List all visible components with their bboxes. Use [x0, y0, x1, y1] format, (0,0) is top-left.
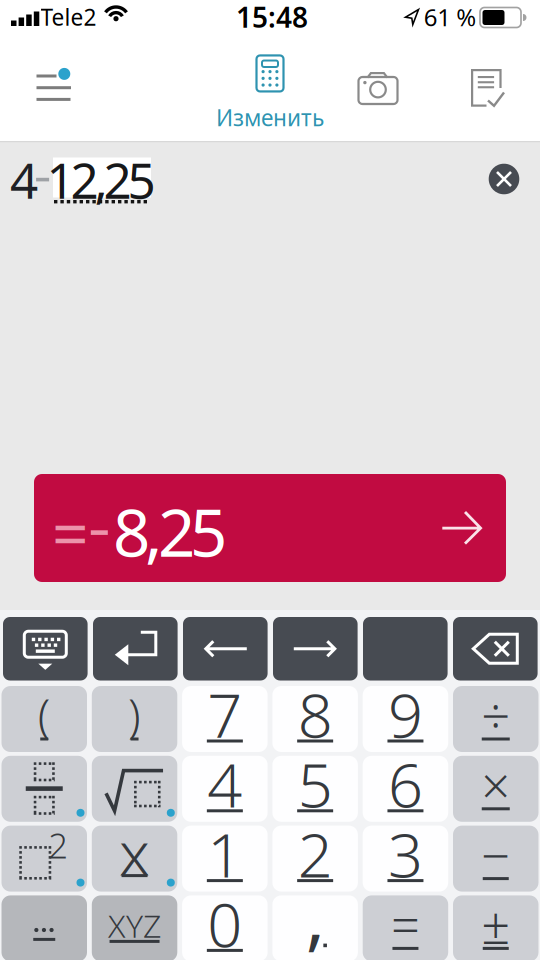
- staticText: ,: [306, 868, 325, 960]
- button[interactable]: Blank: [363, 617, 448, 680]
- staticText: −: [481, 821, 510, 888]
- button[interactable]: Return: [93, 617, 178, 680]
- staticText: ): [128, 685, 141, 745]
- staticText: Tele2: [40, 2, 96, 32]
- staticText: 2: [298, 813, 333, 894]
- button[interactable]: XYZ: [92, 895, 177, 960]
- staticText: 8: [298, 673, 333, 755]
- button[interactable]: ±: [453, 895, 538, 960]
- button[interactable]: Menu: [26, 64, 82, 112]
- button[interactable]: ×: [453, 756, 538, 822]
- button[interactable]: 0: [182, 895, 268, 960]
- staticText: 9: [388, 673, 423, 755]
- staticText: XYZ: [108, 904, 161, 947]
- staticText: 1: [207, 813, 242, 894]
- staticText: 4: [10, 147, 38, 212]
- button[interactable]: 3: [363, 826, 448, 892]
- button[interactable]: More: [1, 895, 87, 960]
- button[interactable]: 8: [272, 686, 358, 752]
- staticText: =: [391, 891, 420, 958]
- staticText: 3: [388, 813, 423, 894]
- staticText: 15:48: [236, 0, 308, 36]
- staticText: (: [38, 685, 51, 745]
- button[interactable]: ,: [272, 895, 358, 960]
- staticText: 0: [207, 883, 242, 960]
- staticText: 12,25: [46, 147, 155, 212]
- button[interactable]: (: [1, 686, 87, 752]
- button[interactable]: Clear: [489, 164, 519, 194]
- staticText: Изменить: [216, 102, 324, 132]
- staticText: ÷: [481, 681, 510, 749]
- button[interactable]: Square root: [92, 756, 177, 822]
- button[interactable]: =: [363, 895, 448, 960]
- staticText: 8,25: [113, 488, 227, 575]
- button[interactable]: −: [453, 826, 538, 892]
- button[interactable]: 9: [363, 686, 448, 752]
- button[interactable]: Move right: [273, 617, 358, 680]
- button[interactable]: 4: [182, 756, 268, 822]
- button[interactable]: Fraction: [1, 756, 87, 822]
- staticText: ×: [481, 751, 510, 818]
- staticText: 2: [48, 822, 68, 868]
- staticText: 5: [298, 743, 333, 824]
- staticText: x: [119, 811, 150, 892]
- button[interactable]: 6: [363, 756, 448, 822]
- staticText: 7: [207, 673, 242, 755]
- staticText: 61 %: [424, 1, 476, 33]
- button[interactable]: Edit: [216, 55, 324, 132]
- button[interactable]: Result: [34, 474, 506, 582]
- button[interactable]: Delete: [453, 617, 538, 680]
- button[interactable]: x: [92, 826, 177, 892]
- button[interactable]: Camera: [350, 64, 406, 112]
- staticText: 6: [388, 743, 423, 824]
- button[interactable]: ÷: [453, 686, 538, 752]
- staticText: ±: [481, 891, 510, 958]
- button[interactable]: Dismiss keyboard: [3, 617, 88, 680]
- button[interactable]: Tasks: [462, 64, 514, 112]
- staticText: =: [52, 490, 89, 575]
- button[interactable]: 5: [272, 756, 358, 822]
- button[interactable]: ): [92, 686, 177, 752]
- button[interactable]: 7: [182, 686, 268, 752]
- button[interactable]: 2: [272, 826, 358, 892]
- button[interactable]: Move left: [183, 617, 268, 680]
- button[interactable]: 1: [182, 826, 268, 892]
- button[interactable]: Square: [1, 826, 87, 892]
- staticText: 4: [207, 743, 242, 824]
